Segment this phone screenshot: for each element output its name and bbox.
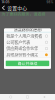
staticText: 98% <box>46 0 53 4</box>
staticText: 设置中心 <box>7 4 27 11</box>
button[interactable]: 其他身份暂不确定 <box>4 52 51 58</box>
staticText: 请选择您的类型 <box>13 27 41 33</box>
button[interactable]: Back <box>1 4 6 11</box>
button[interactable]: Back <box>38 94 50 100</box>
button[interactable]: 我是个人用户消费者 <box>4 33 51 39</box>
button[interactable]: 确认并继续 <box>6 61 49 66</box>
staticText: 14:05 <box>2 0 10 4</box>
staticText: 为了更好的服务，请选择 <box>1 11 45 16</box>
staticText: 供应商或合作伙伴 <box>6 46 38 52</box>
button[interactable]: Recents <box>5 94 17 100</box>
staticText: 公司客户代表 <box>6 39 30 45</box>
button[interactable]: Home <box>21 94 33 100</box>
staticText: 确认并继续 <box>17 61 37 66</box>
staticText: 我是个人用户消费者 <box>6 33 42 39</box>
button[interactable]: 供应商或合作伙伴 <box>4 46 51 52</box>
staticText: 其他身份暂不确定 <box>6 52 38 58</box>
button[interactable]: 公司客户代表 <box>4 39 51 45</box>
